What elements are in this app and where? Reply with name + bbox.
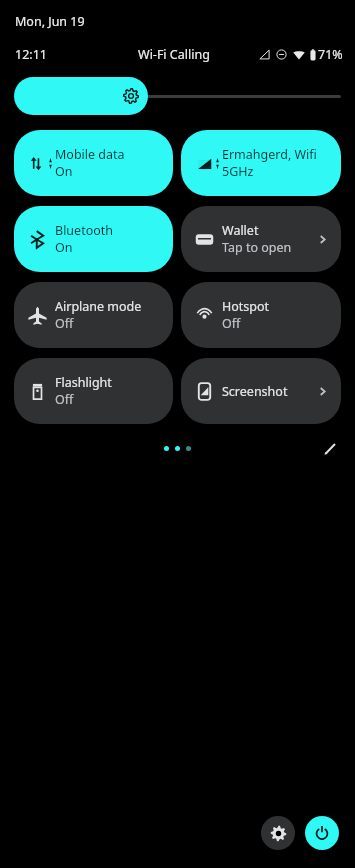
staticText: Off	[222, 315, 241, 332]
staticText: Mobile data	[55, 146, 125, 163]
staticText: 12:11	[15, 46, 47, 63]
staticText: Off	[55, 315, 74, 332]
staticText: 71%	[318, 46, 343, 63]
staticText: 5GHz	[222, 163, 254, 180]
staticText: Wi-Fi Calling	[138, 46, 210, 63]
button[interactable]: Hotspot	[181, 282, 341, 348]
button[interactable]: Mobile data	[14, 130, 173, 196]
staticText: Flashlight	[55, 374, 112, 391]
staticText: Tap to open	[222, 239, 292, 256]
staticText: Bluetooth	[55, 222, 114, 239]
button[interactable]: Wallet	[181, 206, 341, 272]
staticText: Wallet	[222, 222, 259, 239]
button[interactable]: Screenshot	[181, 358, 341, 424]
staticText: On	[55, 239, 73, 256]
staticText: Hotspot	[222, 298, 270, 315]
button[interactable]: Edit tiles	[317, 436, 343, 460]
button[interactable]: Flashlight	[14, 358, 173, 424]
staticText: Mon, Jun 19	[15, 13, 85, 30]
button[interactable]: Power	[305, 816, 339, 850]
staticText: Airplane mode	[55, 298, 142, 315]
button[interactable]: Airplane mode	[14, 282, 173, 348]
button[interactable]: Ermahgerd, Wifi	[181, 130, 341, 196]
staticText: On	[55, 163, 73, 180]
button[interactable]: Brightness	[14, 77, 341, 115]
button[interactable]: Bluetooth	[14, 206, 173, 272]
staticText: Ermahgerd, Wifi	[222, 146, 317, 163]
button[interactable]: Settings	[261, 816, 295, 850]
staticText: Off	[55, 391, 74, 408]
staticText: Screenshot	[222, 383, 288, 400]
